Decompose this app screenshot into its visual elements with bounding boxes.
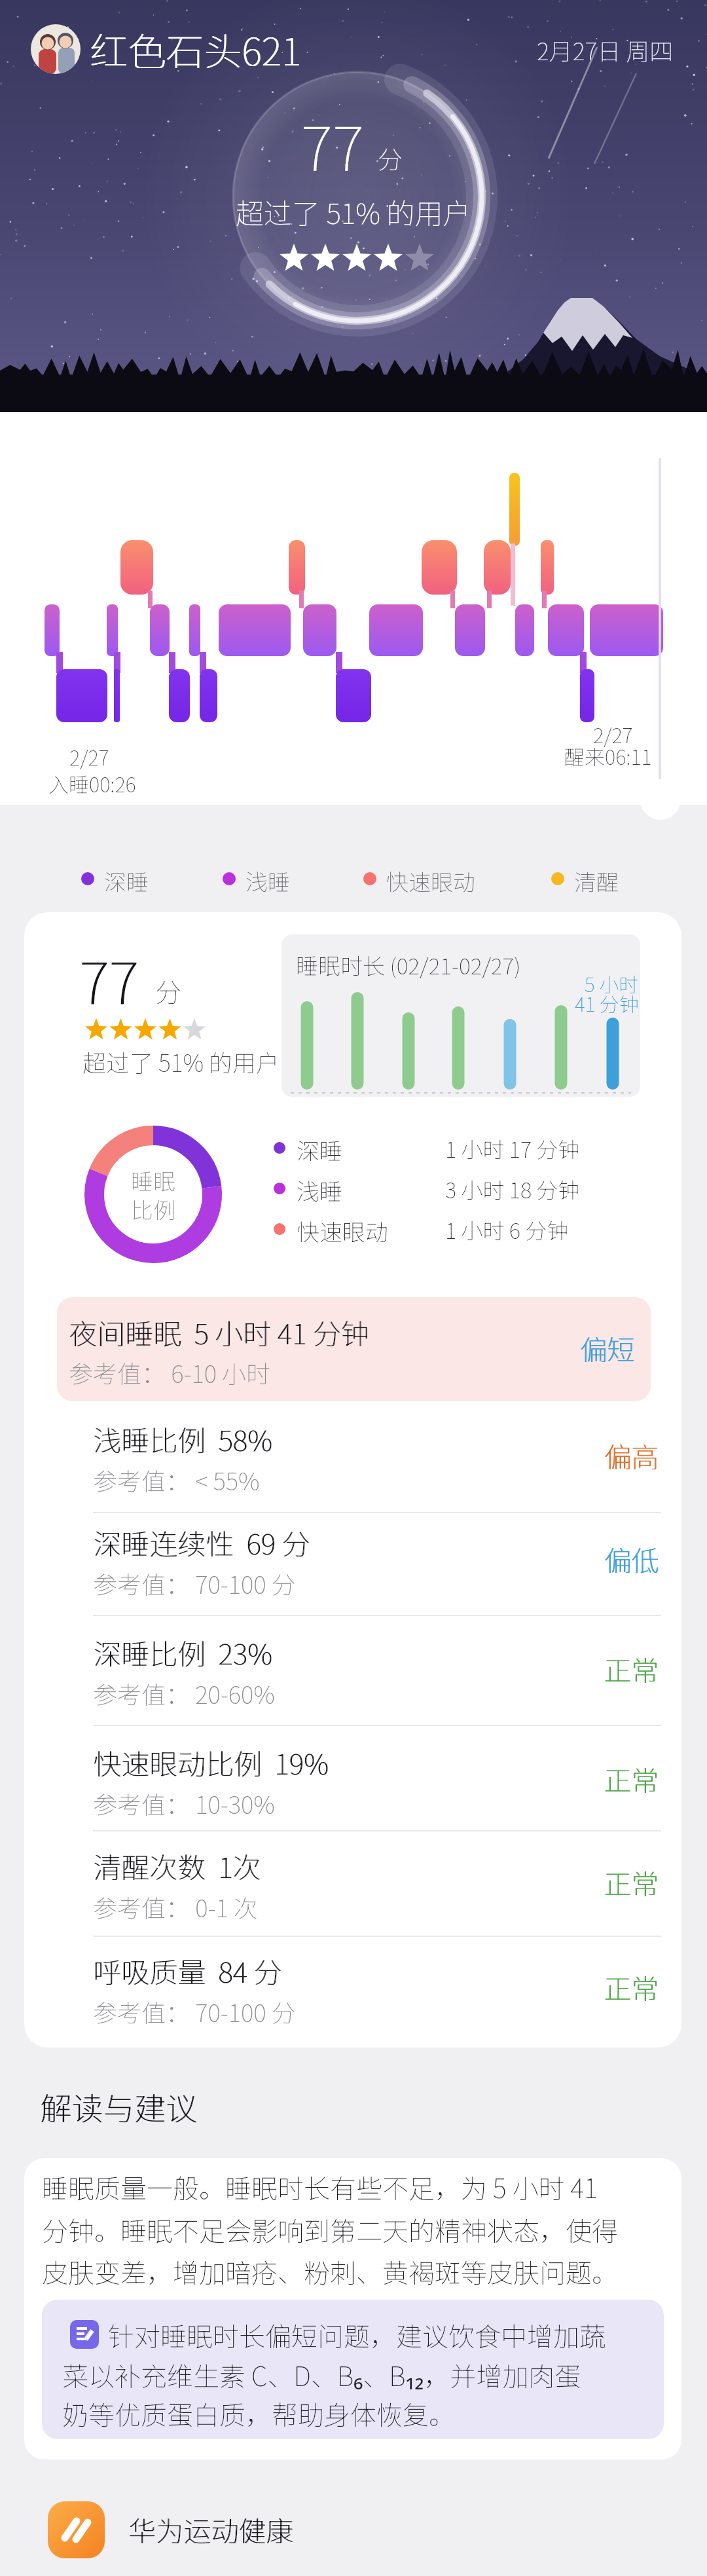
staticText: 参考值： 70-100 分 bbox=[93, 1566, 296, 1601]
staticText: 2月27日 周四 bbox=[537, 33, 674, 67]
staticText: 菜以补充维生素 C、D、B₆、B₁₂，并增加肉蛋 bbox=[62, 2356, 581, 2394]
staticText: 华为运动健康 bbox=[129, 2509, 295, 2549]
staticText: 浅睡 bbox=[297, 1173, 343, 1207]
staticText: 浅睡比例 58% bbox=[93, 1418, 272, 1459]
staticText: 清醒 bbox=[574, 865, 619, 897]
staticText: 正常 bbox=[604, 1862, 659, 1902]
staticText: 夜间睡眠 5 小时 41 分钟 bbox=[69, 1312, 369, 1352]
button[interactable] bbox=[31, 24, 81, 74]
staticText: 深睡 bbox=[297, 1133, 343, 1166]
staticText: 深睡连续性 69 分 bbox=[93, 1522, 310, 1562]
staticText: 偏高 bbox=[604, 1435, 660, 1475]
button[interactable]: 夜间睡眠 5 小时 41 分钟 bbox=[57, 1297, 651, 1401]
staticText: 快速眼动比例 19% bbox=[94, 1742, 329, 1782]
staticText: 浅睡 bbox=[245, 865, 290, 897]
staticText: 快速眼动比例 19% bbox=[93, 1742, 329, 1782]
staticText: 77 bbox=[79, 938, 139, 1020]
staticText: 红色石头621 bbox=[90, 22, 302, 77]
staticText: 分 bbox=[378, 140, 403, 176]
staticText: 偏短 bbox=[580, 1328, 636, 1368]
staticText: 超过了 51% 的用户 bbox=[82, 1044, 280, 1078]
staticText: 参考值： 70-100 分 bbox=[93, 1994, 296, 2029]
staticText: 红色石头621 bbox=[90, 22, 301, 77]
staticText: 正常 bbox=[604, 1862, 660, 1902]
staticText: 入睡00:26 bbox=[48, 769, 136, 798]
staticText: 快速眼动 bbox=[386, 865, 475, 897]
staticText: 清醒次数 1次 bbox=[94, 1845, 262, 1886]
staticText: 2/27 bbox=[69, 742, 109, 771]
staticText: 奶等优质蛋白质，帮助身体恢复。 bbox=[62, 2395, 455, 2433]
staticText: 偏低 bbox=[604, 1539, 660, 1579]
staticText: 超过了 51% 的用户 bbox=[236, 191, 471, 232]
staticText: 睡眠质量一般。睡眠时长有些不足，为 5 小时 41 bbox=[42, 2168, 598, 2206]
staticText: 参考值： 20-60% bbox=[93, 1676, 275, 1711]
staticText: 快速眼动 bbox=[297, 1214, 389, 1247]
staticText: 夜间睡眠 5 小时 41 分钟 bbox=[69, 1312, 370, 1352]
staticText: 呼吸质量 84 分 bbox=[94, 1950, 283, 1991]
staticText: 解读与建议 bbox=[40, 2084, 198, 2129]
staticText: 深睡连续性 69 分 bbox=[94, 1522, 311, 1562]
staticText: 正常 bbox=[604, 1759, 659, 1799]
staticText: 睡眠时长 (02/21-02/27) bbox=[296, 949, 521, 981]
staticText: 5 小时 bbox=[585, 969, 639, 997]
staticText: 参考值： 6-10 小时 bbox=[69, 1355, 271, 1390]
staticText: 1 小时 17 分钟 bbox=[445, 1133, 580, 1164]
staticText: 分钟。睡眠不足会影响到第二天的精神状态，使得 bbox=[42, 2211, 618, 2249]
staticText: 深睡 bbox=[104, 865, 149, 897]
staticText: 偏高 bbox=[604, 1435, 659, 1475]
staticText: 皮肤变差，增加暗疮、粉刺、黄褐斑等皮肤问题。 bbox=[42, 2253, 618, 2291]
staticText: 睡眠 bbox=[131, 1164, 175, 1196]
staticText: 醒来06:11 bbox=[564, 741, 652, 771]
button[interactable] bbox=[640, 779, 681, 820]
staticText: 参考值： 0-1 次 bbox=[93, 1889, 258, 1924]
staticText: 解读与建议 bbox=[41, 2084, 198, 2129]
staticText: 深睡比例 23% bbox=[94, 1632, 273, 1672]
staticText: 华为运动健康 bbox=[128, 2509, 294, 2549]
staticText: 77 bbox=[80, 938, 139, 1020]
staticText: 参考值： 10-30% bbox=[93, 1786, 275, 1821]
staticText: 1 小时 6 分钟 bbox=[445, 1214, 569, 1245]
staticText: 正常 bbox=[604, 1967, 659, 2007]
staticText: 2/27 bbox=[593, 720, 633, 749]
button[interactable] bbox=[48, 2501, 105, 2558]
staticText: 正常 bbox=[604, 1967, 660, 2007]
staticText: 正常 bbox=[604, 1759, 660, 1799]
staticText: 3 小时 18 分钟 bbox=[445, 1173, 580, 1205]
staticText: 针对睡眠时长偏短问题，建议饮食中增加蔬 bbox=[108, 2316, 606, 2354]
staticText: 清醒次数 1次 bbox=[93, 1845, 261, 1886]
staticText: 偏短 bbox=[579, 1328, 635, 1368]
staticText: 分 bbox=[155, 972, 181, 1010]
staticText: 77 bbox=[301, 101, 364, 188]
staticText: 正常 bbox=[604, 1649, 659, 1689]
staticText: 偏低 bbox=[604, 1539, 659, 1579]
staticText: 比例 bbox=[131, 1193, 175, 1225]
staticText: 正常 bbox=[604, 1649, 660, 1689]
staticText: 浅睡比例 58% bbox=[94, 1418, 273, 1459]
staticText: 参考值： < 55% bbox=[93, 1462, 260, 1498]
staticText: 深睡比例 23% bbox=[93, 1632, 272, 1672]
staticText: 呼吸质量 84 分 bbox=[93, 1950, 282, 1991]
staticText: 41 分钟 bbox=[575, 989, 639, 1017]
